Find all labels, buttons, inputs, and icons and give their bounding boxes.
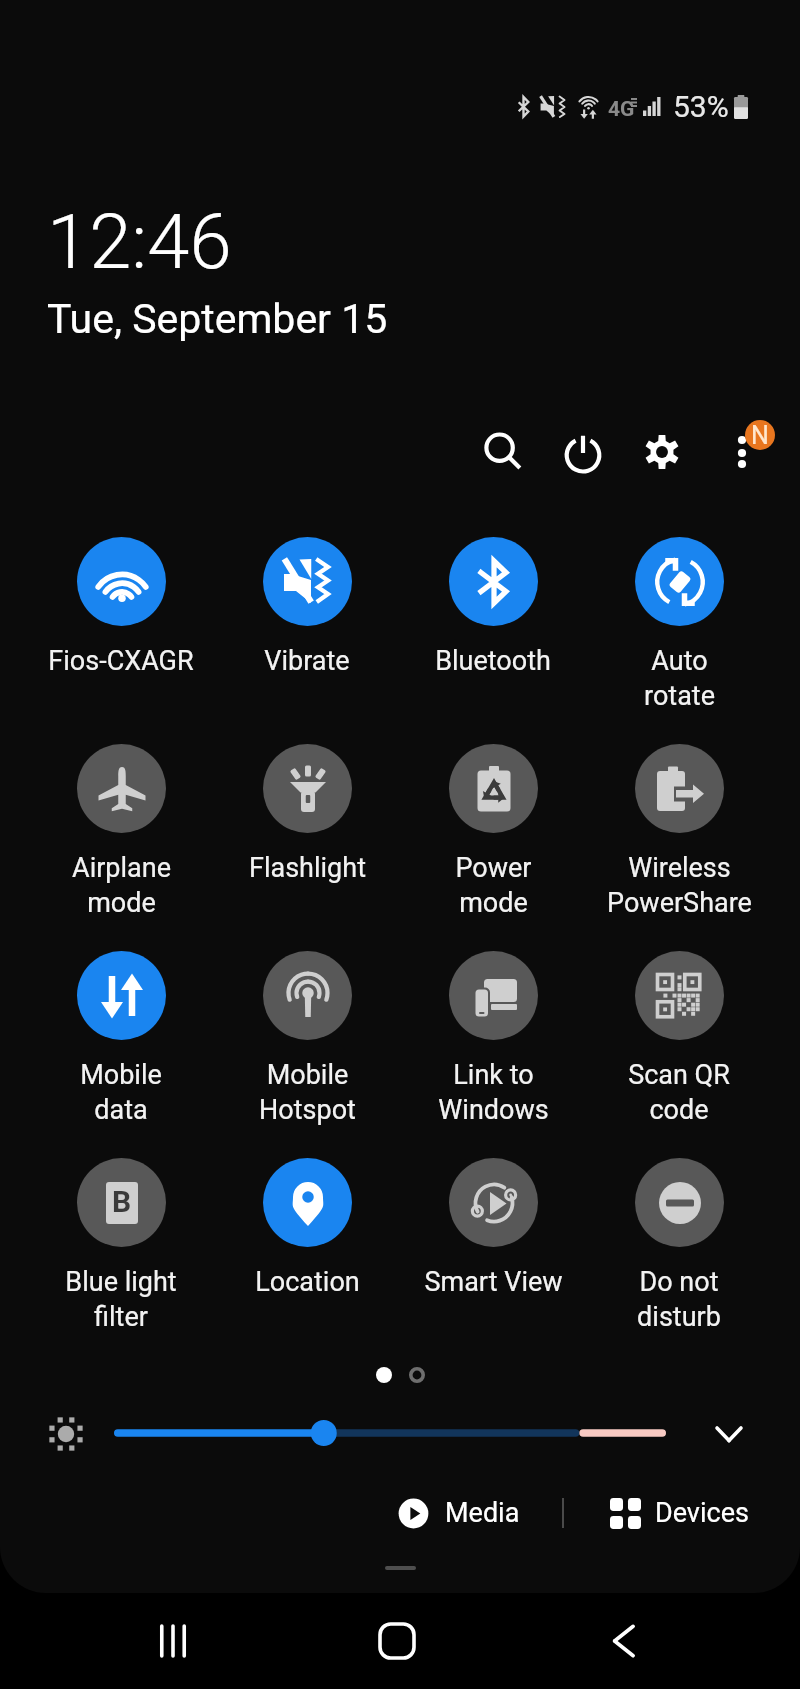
- staticText: Fios-CXAGR: [48, 645, 194, 677]
- button[interactable]: Media: [398, 1497, 520, 1529]
- button[interactable]: Search: [468, 417, 540, 489]
- staticText: Power mode: [455, 852, 532, 918]
- staticText: N: [751, 421, 769, 450]
- button[interactable]: Recents: [61, 1593, 285, 1689]
- staticText: Media: [445, 1497, 520, 1529]
- button[interactable]: Mobile Hotspot: [214, 951, 400, 1125]
- staticText: Link to Windows: [438, 1059, 549, 1125]
- staticText: Bluetooth: [435, 645, 551, 677]
- button[interactable]: Settings: [626, 416, 698, 488]
- button[interactable]: Expand: [701, 1406, 757, 1462]
- staticText: 53%: [673, 89, 729, 124]
- staticText: Location: [255, 1266, 360, 1298]
- button[interactable]: Do not disturb: [586, 1158, 772, 1332]
- button[interactable]: Scan QR code: [586, 951, 772, 1125]
- staticText: Flashlight: [249, 852, 366, 884]
- staticText: 4G: [608, 97, 635, 122]
- button[interactable]: Fios-CXAGR: [28, 537, 214, 677]
- staticText: Do not disturb: [637, 1266, 721, 1332]
- button[interactable]: Bluetooth: [400, 537, 586, 677]
- button[interactable]: Link to Windows: [400, 951, 586, 1125]
- button[interactable]: Auto rotate: [586, 537, 772, 711]
- staticText: Vibrate: [264, 645, 350, 677]
- staticText: Blue light filter: [65, 1266, 177, 1332]
- button[interactable]: Airplane mode: [28, 744, 214, 918]
- staticText: B: [112, 1184, 132, 1219]
- button[interactable]: Mobile data: [28, 951, 214, 1125]
- button[interactable]: Back: [509, 1593, 733, 1689]
- button[interactable]: Power off: [547, 417, 619, 489]
- staticText: Tue, September 15: [47, 295, 388, 343]
- staticText: Wireless PowerShare: [607, 852, 752, 918]
- button[interactable]: Location: [214, 1158, 400, 1298]
- button[interactable]: Vibrate: [214, 537, 400, 677]
- button[interactable]: B: [28, 1158, 214, 1332]
- button[interactable]: Power mode: [400, 744, 586, 918]
- button[interactable]: Flashlight: [214, 744, 400, 884]
- staticText: Mobile Hotspot: [259, 1059, 356, 1125]
- button[interactable]: More options: [710, 412, 790, 492]
- staticText: Mobile data: [80, 1059, 162, 1125]
- staticText: Scan QR code: [628, 1059, 730, 1125]
- staticText: Devices: [655, 1497, 749, 1529]
- button[interactable]: Devices: [610, 1497, 749, 1529]
- button[interactable]: [114, 1409, 666, 1457]
- button[interactable]: Wireless PowerShare: [586, 744, 772, 918]
- button[interactable]: Smart View: [400, 1158, 586, 1298]
- staticText: Smart View: [424, 1266, 563, 1298]
- staticText: 12:46: [47, 197, 232, 286]
- staticText: Airplane mode: [72, 852, 171, 918]
- staticText: Auto rotate: [644, 645, 715, 711]
- button[interactable]: Home: [285, 1593, 509, 1689]
